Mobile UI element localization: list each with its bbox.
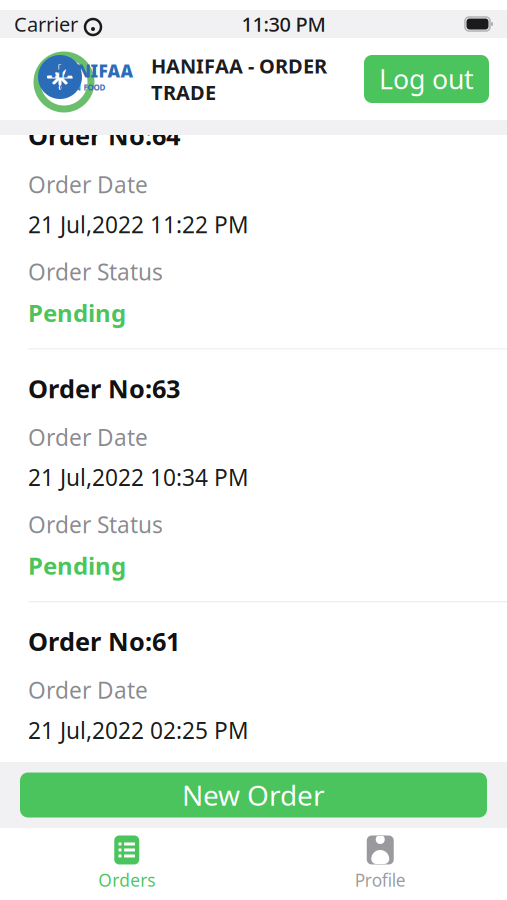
staticText: Pending [28, 297, 126, 329]
button[interactable]: Profile [253, 826, 507, 891]
staticText: Order Date [28, 675, 148, 705]
staticText: FROZEN FOOD [50, 82, 105, 93]
staticText: Order No:63 [28, 371, 180, 405]
staticText: Order No:61 [28, 624, 180, 658]
staticText: Orders [98, 868, 155, 891]
staticText: 21 Jul,2022 11:22 PM [28, 209, 249, 240]
staticText: Carrier [14, 11, 78, 37]
staticText: Pending [28, 549, 126, 581]
button[interactable]: Order No:61 [0, 602, 507, 792]
staticText: New Order [182, 776, 325, 814]
staticText: Log out [379, 61, 474, 97]
staticText: HANIFAA [50, 59, 133, 82]
button[interactable]: Order No:64 [0, 97, 507, 349]
staticText: Order Status [28, 762, 163, 792]
staticText: Profile [355, 868, 406, 891]
staticText: HANIFAA - ORDER TRADE [151, 52, 327, 105]
staticText: Order Date [28, 169, 148, 199]
staticText: 21 Jul,2022 10:34 PM [28, 462, 249, 492]
staticText: Order Status [28, 509, 163, 539]
staticText: Order No:64 [28, 119, 180, 152]
button[interactable]: Orders [0, 826, 253, 891]
staticText: Order Status [28, 257, 163, 287]
staticText: 11:30 PM [241, 11, 325, 37]
button[interactable]: Order No:63 [0, 349, 507, 602]
button[interactable]: Log out [364, 55, 489, 103]
staticText: Order Date [28, 422, 148, 452]
button[interactable]: New Order [20, 772, 487, 817]
staticText: 21 Jul,2022 02:25 PM [28, 715, 249, 745]
